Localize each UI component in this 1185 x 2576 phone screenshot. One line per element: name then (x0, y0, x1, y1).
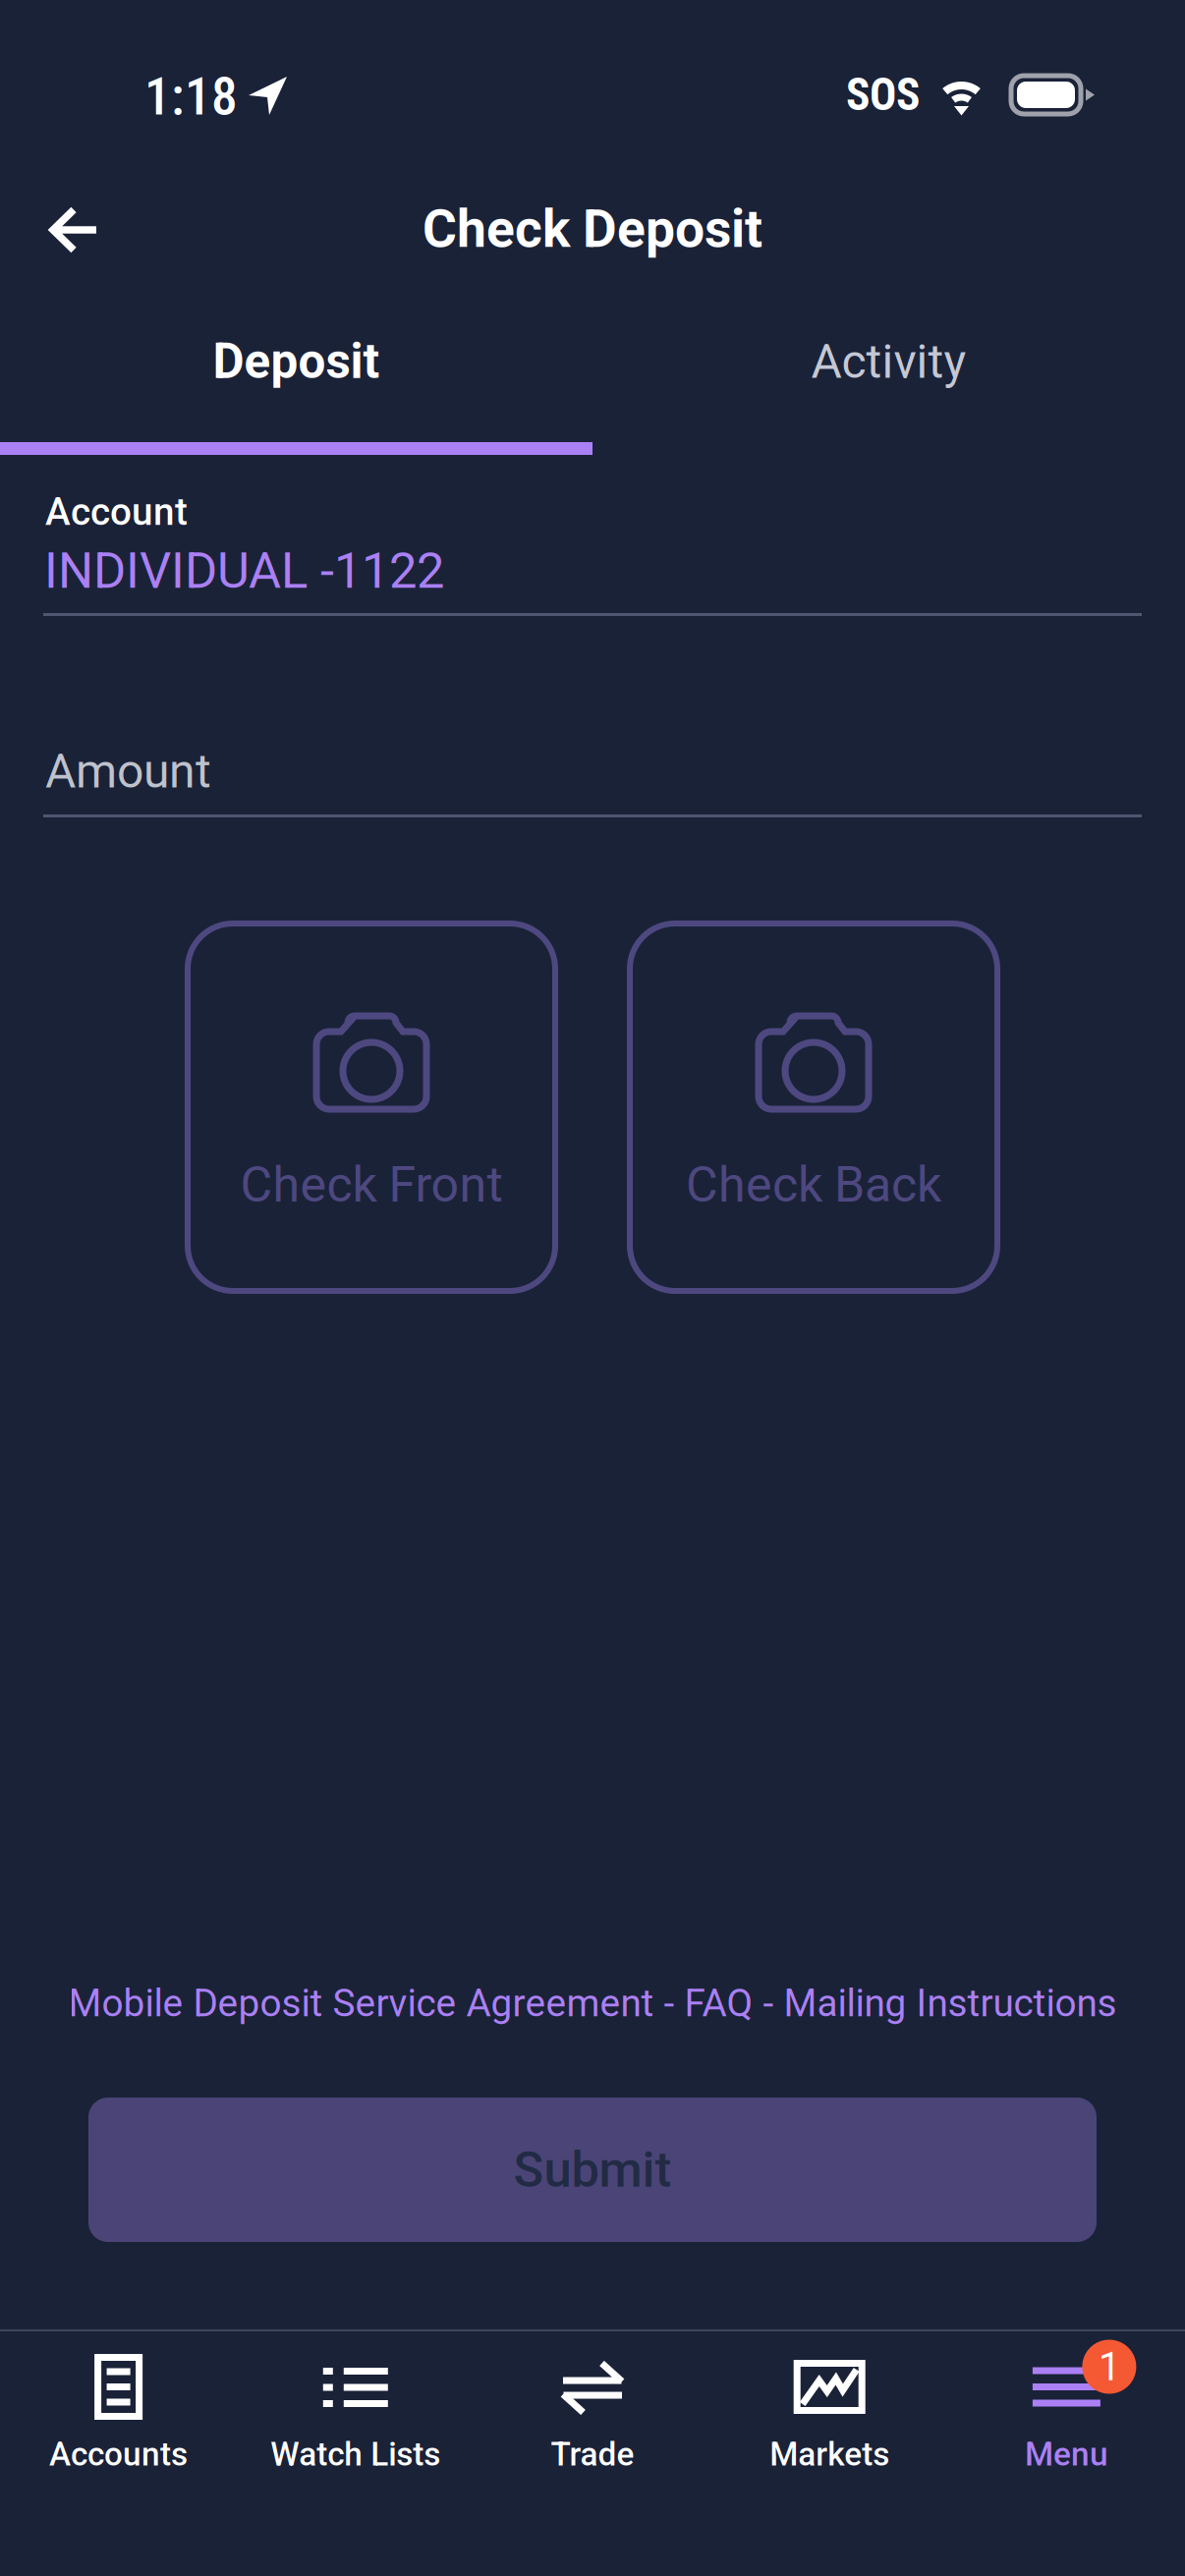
button[interactable]: Deposit (0, 288, 592, 435)
button[interactable]: Watch Lists (237, 2341, 474, 2576)
button[interactable]: Mobile Deposit Service Agreement - FAQ -… (0, 1980, 1185, 2027)
button[interactable]: Submit (88, 2098, 1097, 2242)
button[interactable]: 1 (948, 2341, 1185, 2576)
button[interactable]: Activity (592, 288, 1185, 435)
button[interactable]: Markets (711, 2341, 948, 2576)
staticText: Markets (770, 2435, 889, 2473)
staticText: Mobile Deposit Service Agreement - FAQ -… (68, 1981, 1117, 2025)
staticText: Menu (1025, 2435, 1108, 2473)
staticText: 1:18 (144, 66, 238, 127)
staticText: Account (45, 490, 188, 534)
button[interactable]: Back (21, 179, 129, 281)
staticText: 1 (1098, 2344, 1120, 2390)
staticText: Deposit (213, 333, 380, 390)
staticText: INDIVIDUAL -1122 (44, 542, 444, 600)
button[interactable]: Check Back (630, 924, 997, 1291)
staticText: Accounts (49, 2435, 188, 2473)
staticText: Activity (811, 334, 966, 389)
staticText: SOS (846, 69, 920, 121)
staticText: Submit (513, 2141, 672, 2199)
staticText: Check Deposit (423, 198, 762, 260)
button[interactable]: Trade (474, 2341, 711, 2576)
staticText: Amount (45, 744, 211, 799)
staticText: Check Front (240, 1156, 503, 1214)
staticText: Check Back (686, 1156, 941, 1214)
button[interactable]: Check Front (188, 924, 555, 1291)
button[interactable]: Accounts (0, 2341, 237, 2576)
staticText: Trade (551, 2435, 634, 2473)
staticText: Watch Lists (271, 2435, 440, 2473)
